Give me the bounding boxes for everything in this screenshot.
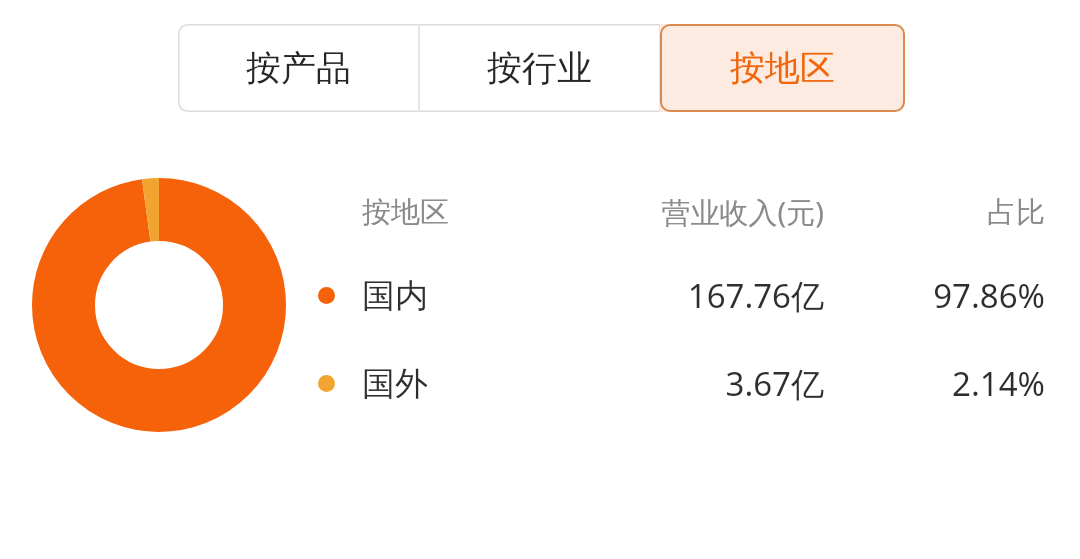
other: 按地区营业收入占比环形图 bbox=[32, 178, 286, 432]
staticText: 按地区 bbox=[730, 46, 835, 90]
staticText: 按产品 bbox=[246, 46, 351, 90]
staticText: 占比 bbox=[300, 194, 1045, 231]
staticText: 167.76亿 bbox=[300, 273, 824, 318]
staticText: 2.14% bbox=[300, 361, 1045, 406]
button[interactable]: 按地区 bbox=[300, 189, 1060, 235]
button[interactable]: 按产品 bbox=[178, 24, 419, 112]
staticText: 按行业 bbox=[487, 46, 592, 90]
staticText: 营业收入(元) bbox=[300, 192, 824, 232]
staticText: 国内 bbox=[362, 275, 428, 317]
staticText: 3.67亿 bbox=[300, 361, 824, 406]
staticText: 国外 bbox=[362, 363, 428, 405]
staticText: 97.86% bbox=[300, 273, 1045, 318]
button[interactable]: 按行业 bbox=[419, 24, 660, 112]
staticText: 按地区 bbox=[362, 194, 449, 231]
button[interactable]: 国内 bbox=[300, 269, 1060, 322]
button[interactable]: 按地区 bbox=[660, 24, 905, 112]
button[interactable]: 国外 bbox=[300, 357, 1060, 410]
